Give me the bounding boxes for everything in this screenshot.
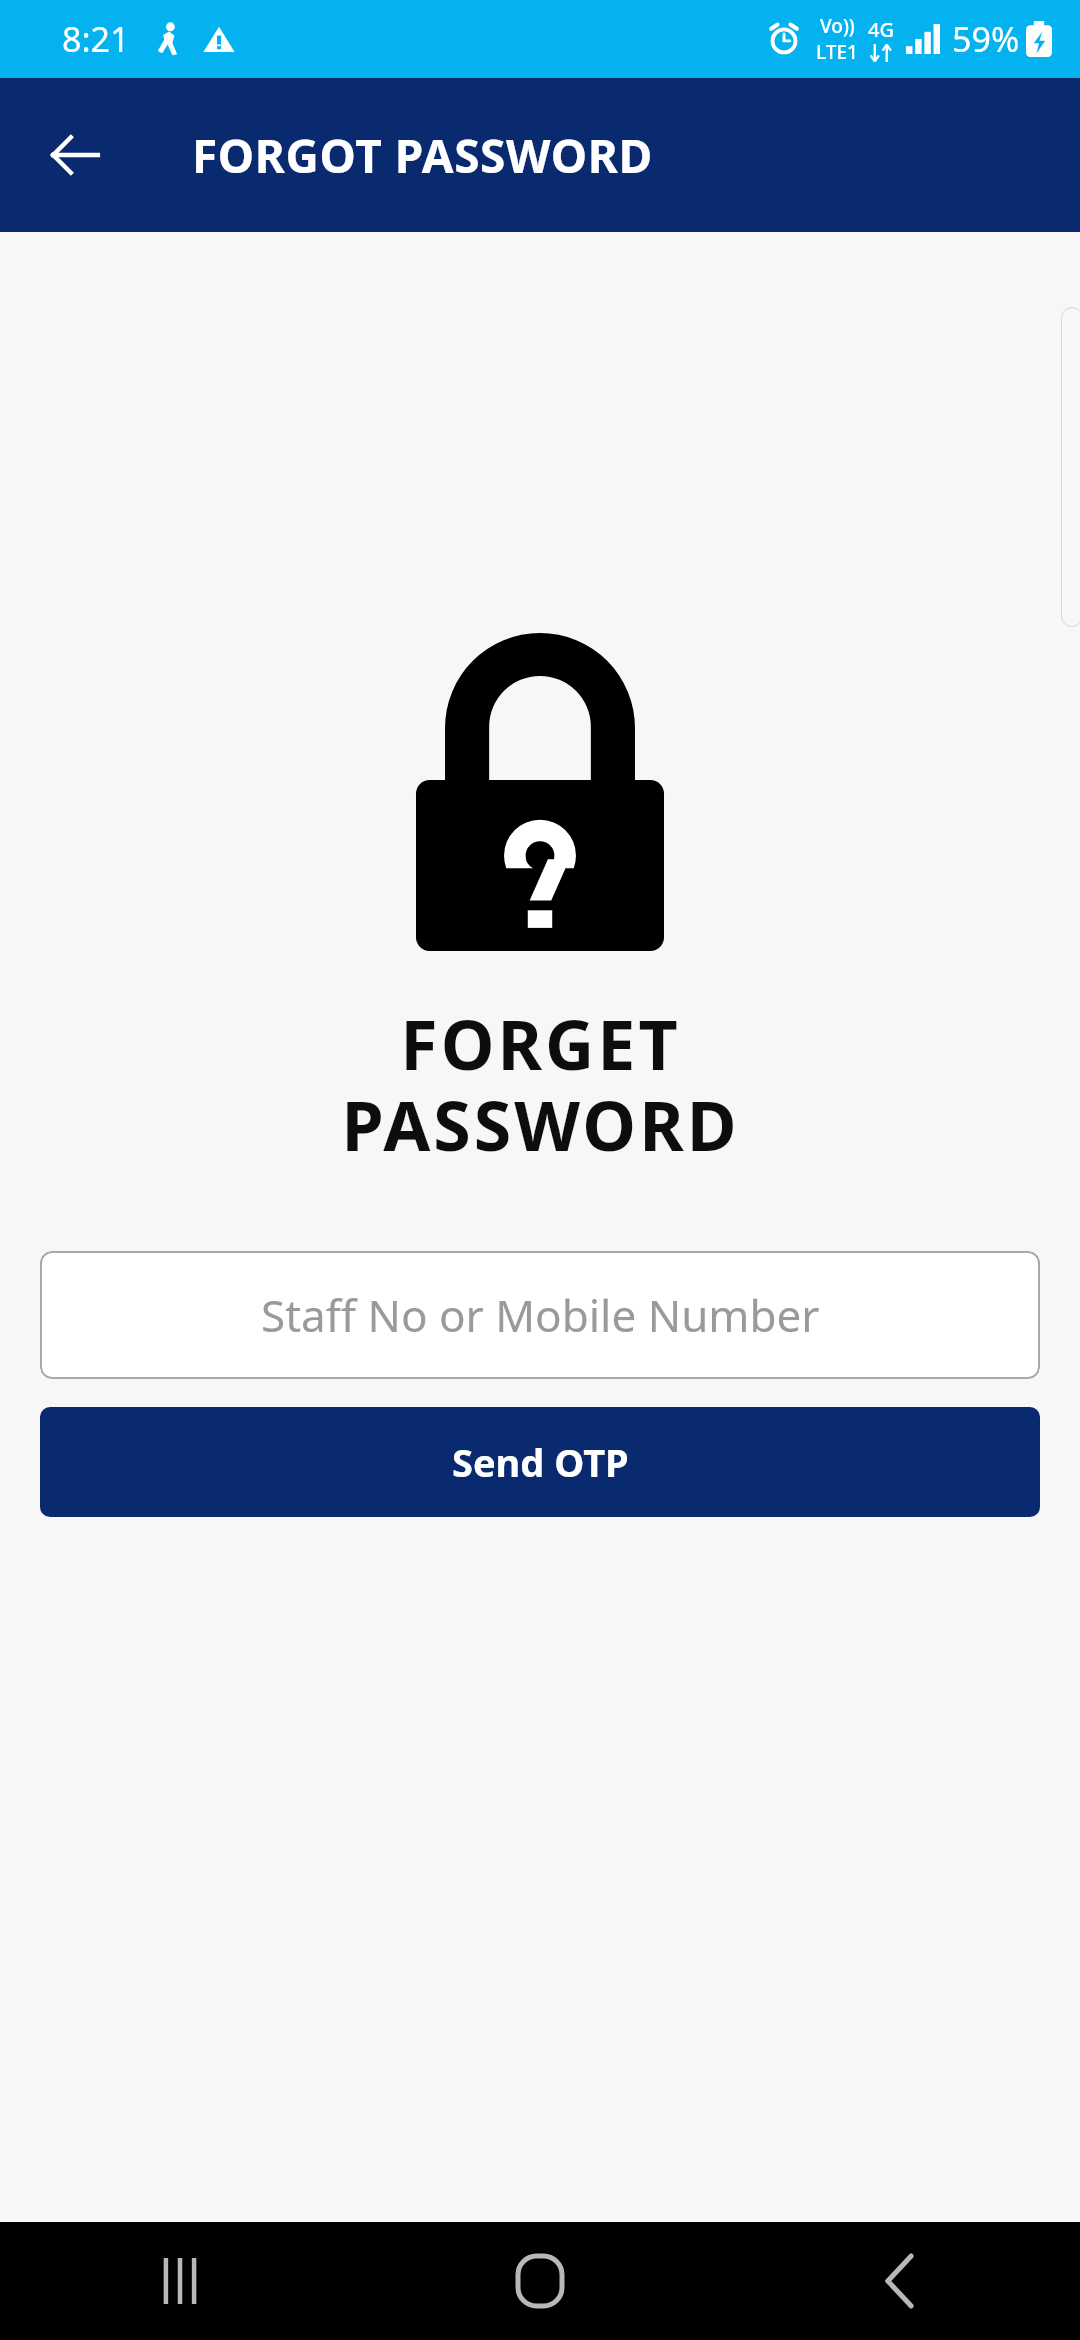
staticText: FORGOT PASSWORD bbox=[192, 124, 653, 187]
staticText: 4G bbox=[868, 16, 894, 43]
staticText: Vo)) bbox=[820, 13, 855, 39]
staticText: LTE1 bbox=[816, 39, 858, 65]
button[interactable]: Send OTP bbox=[40, 1407, 1040, 1517]
staticText: Staff No or Mobile Number bbox=[261, 1285, 820, 1345]
staticText: 59% bbox=[952, 16, 1020, 62]
staticText: 8:21 bbox=[62, 16, 130, 62]
staticText: FORGET PASSWORD bbox=[341, 997, 740, 1171]
button[interactable]: Back bbox=[20, 100, 130, 210]
button[interactable]: Staff No or Mobile Number bbox=[40, 1251, 1040, 1379]
button[interactable]: Recents bbox=[105, 2222, 255, 2340]
button[interactable]: Home bbox=[465, 2222, 615, 2340]
staticText: Send OTP bbox=[452, 1436, 629, 1488]
other: Forgot password lock bbox=[416, 633, 664, 951]
button[interactable]: Back bbox=[825, 2222, 975, 2340]
